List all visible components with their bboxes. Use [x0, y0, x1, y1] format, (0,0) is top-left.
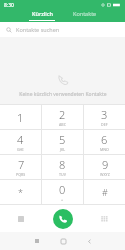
button[interactable]: 3	[84, 105, 125, 129]
button[interactable]: 1	[0, 105, 41, 129]
staticText: +	[61, 197, 64, 202]
button[interactable]: Recents	[29, 233, 45, 249]
staticText: TUV	[59, 172, 66, 177]
button[interactable]: 2	[42, 105, 83, 129]
staticText: Kontakte	[73, 10, 97, 17]
button[interactable]: #	[84, 180, 125, 204]
staticText: 0	[59, 182, 66, 197]
button[interactable]: Add contact	[14, 212, 28, 226]
button[interactable]: 6	[84, 130, 125, 154]
button[interactable]: 9	[84, 155, 125, 179]
button[interactable]: Hide keypad	[97, 212, 111, 226]
staticText: 7	[18, 157, 25, 172]
staticText: PQRS	[16, 172, 26, 177]
button[interactable]: *	[0, 180, 41, 204]
button[interactable]: Kontakte	[70, 10, 100, 20]
button[interactable]: Kontakte suchen	[0, 22, 125, 37]
staticText: GHI	[17, 147, 24, 152]
button[interactable]: Call	[53, 209, 73, 229]
staticText: 1	[17, 110, 24, 125]
staticText: 5	[59, 132, 66, 147]
staticText: ABC	[59, 122, 66, 127]
staticText: 9	[102, 157, 109, 172]
staticText: Kontakte suchen	[16, 26, 60, 33]
staticText: 2	[59, 107, 66, 122]
staticText: Kürzlich	[32, 10, 53, 17]
staticText: 8	[59, 157, 66, 172]
staticText: JKL	[60, 147, 66, 152]
button[interactable]: 0	[42, 180, 83, 204]
staticText: #	[102, 186, 108, 198]
staticText: *	[18, 186, 23, 198]
button[interactable]: Back	[81, 233, 97, 249]
staticText: Keine kürzlich verwendeten Kontakte	[19, 91, 107, 98]
staticText: 4	[17, 132, 24, 147]
button[interactable]: 8	[42, 155, 83, 179]
staticText: MNO	[100, 147, 109, 152]
button[interactable]: Kürzlich	[26, 10, 58, 21]
staticText: DEF	[101, 122, 108, 127]
button[interactable]: 5	[42, 130, 83, 154]
button[interactable]: 7	[0, 155, 41, 179]
staticText: 6	[101, 132, 108, 147]
button[interactable]: 4	[0, 130, 41, 154]
staticText: WXYZ	[100, 172, 110, 177]
staticText: 8:30	[4, 2, 14, 9]
button[interactable]: Home	[55, 233, 71, 249]
staticText: 3	[101, 107, 108, 122]
